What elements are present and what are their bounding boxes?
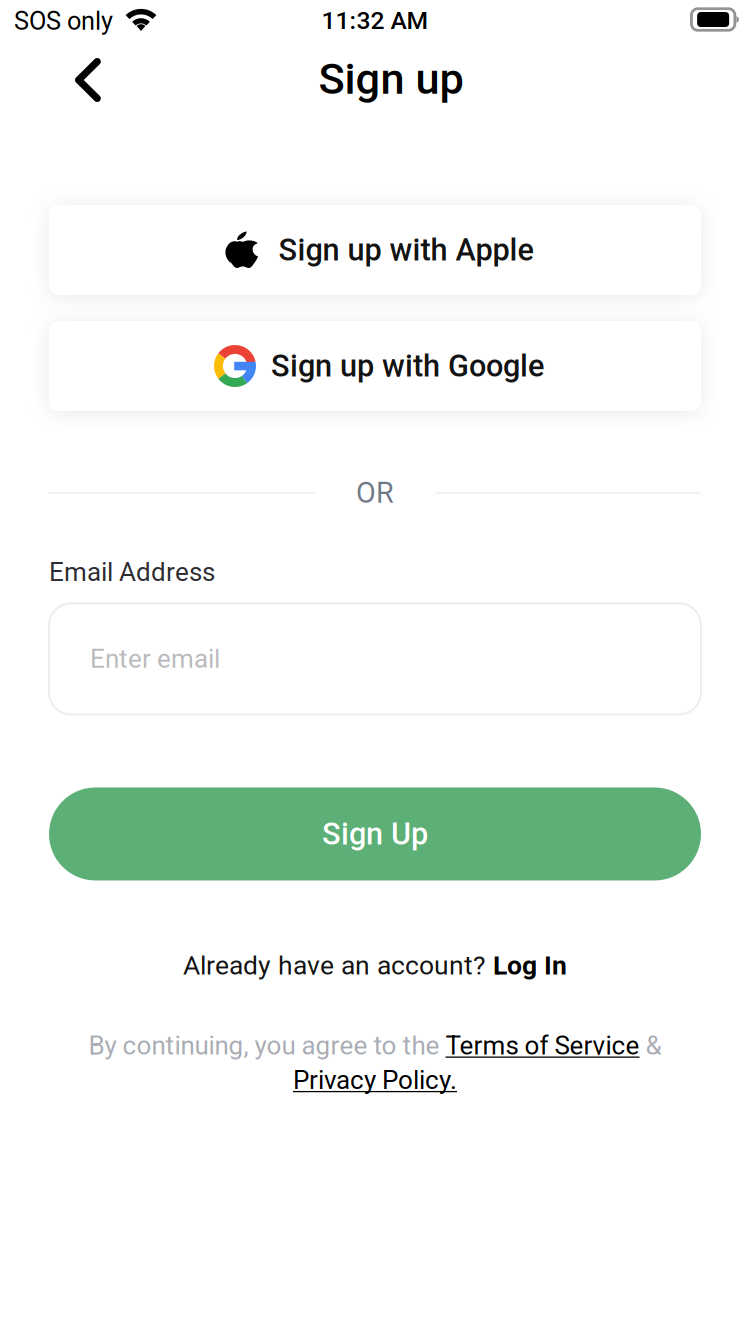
staticText: Terms of Service [445,1030,639,1061]
staticText: Sign up with Google [271,348,544,384]
button[interactable]: Sign Up [49,787,701,880]
staticText: & [639,1030,661,1061]
staticText: Sign Up [322,816,428,852]
staticText: Sign up [318,54,463,104]
staticText: Sign up with Apple [278,232,533,268]
staticText: Privacy Policy. [293,1065,457,1095]
button[interactable]: Sign up with Apple [49,205,701,295]
staticText: Enter email [90,644,220,674]
staticText: Email Address [49,557,215,587]
staticText: OR [356,476,394,510]
button[interactable]: Sign up with Google [49,321,701,411]
button[interactable]: Already have an account? [183,950,567,980]
staticText: 11:32 AM [321,6,428,35]
staticText: Already have an account? [183,950,486,981]
staticText: Log In [493,950,567,981]
button[interactable]: Back [57,49,119,111]
staticText: By continuing, you agree to the [88,1030,445,1061]
staticText: SOS only [14,6,113,36]
